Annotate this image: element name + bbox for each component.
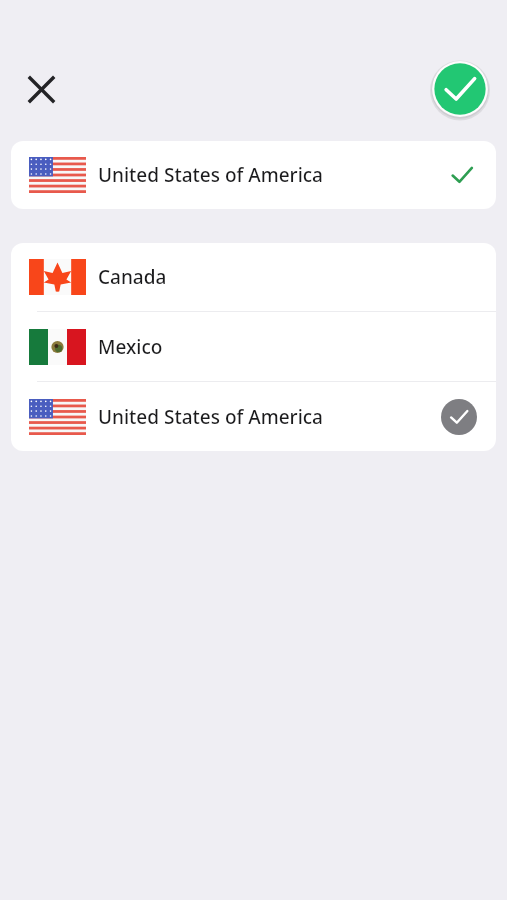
staticText: United States of America bbox=[98, 162, 323, 188]
staticText: Canada bbox=[98, 264, 167, 290]
button[interactable]: Close bbox=[17, 65, 65, 113]
button[interactable]: United States of America bbox=[11, 382, 496, 451]
staticText: United States of America bbox=[98, 404, 323, 430]
other: Selected bbox=[447, 160, 477, 190]
staticText: Mexico bbox=[98, 334, 163, 360]
button[interactable]: Canada bbox=[11, 243, 496, 311]
other: Selected bbox=[441, 399, 477, 435]
button[interactable]: Mexico bbox=[11, 312, 496, 381]
button[interactable]: United States of America bbox=[11, 141, 496, 209]
button[interactable]: Confirm bbox=[430, 59, 490, 119]
